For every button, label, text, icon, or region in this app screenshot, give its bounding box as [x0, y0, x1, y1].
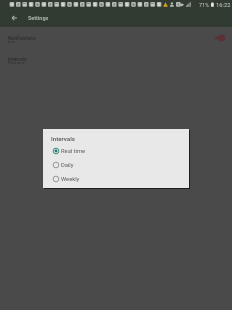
staticText: true	[8, 39, 16, 44]
staticText: Intervals	[8, 56, 27, 62]
staticText: 71%	[199, 2, 210, 8]
staticText: Intervals	[51, 135, 75, 142]
staticText: Notifications	[8, 35, 36, 41]
staticText: Real time	[61, 148, 86, 155]
button[interactable]: Daily	[43, 158, 189, 172]
button[interactable]: Weekly	[43, 172, 189, 186]
button[interactable]: Notifications	[0, 31, 232, 53]
button[interactable]: Real time	[43, 144, 189, 158]
staticText: Daily	[61, 162, 74, 169]
button[interactable]: Back	[9, 13, 20, 24]
staticText: 16:22	[216, 2, 231, 9]
staticText: Settings	[28, 15, 49, 21]
staticText: Weekly	[61, 176, 80, 183]
staticText: Real time	[8, 60, 26, 65]
